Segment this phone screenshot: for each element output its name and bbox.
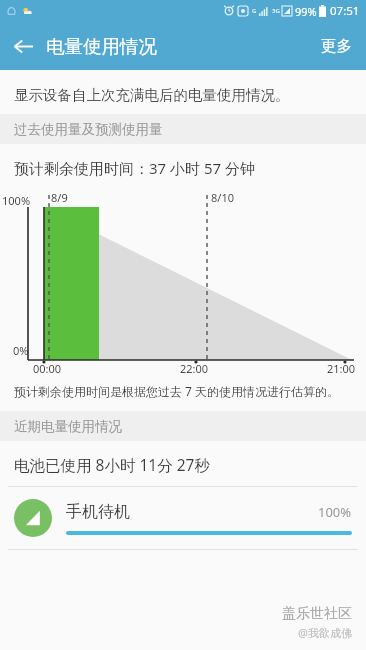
staticText: 近期电量使用情况 [14, 418, 122, 435]
button[interactable]: 手机待机 [0, 487, 366, 549]
staticText: 电池已使用 8小时 11分 27秒 [14, 454, 210, 475]
staticText: 显示设备自上次充满电后的电量使用情况。 [14, 86, 290, 104]
staticText: 更多 [321, 36, 352, 56]
staticText: 100% [2, 193, 31, 208]
staticText: @我欲成佛 [298, 625, 352, 640]
staticText: 电量使用情况 [46, 35, 157, 58]
staticText: 8/9 [51, 190, 68, 205]
staticText: 100% [318, 503, 352, 521]
staticText: G [252, 7, 257, 15]
staticText: 过去使用量及预测使用量 [14, 121, 163, 138]
button[interactable]: Back [0, 23, 46, 69]
staticText: 22:00 [180, 361, 209, 376]
staticText: 07:51 [330, 3, 360, 19]
staticText: 预计剩余使用时间是根据您过去 7 天的使用情况进行估算的。 [14, 383, 340, 399]
staticText: 00:00 [33, 361, 62, 376]
staticText: 预计剩余使用时间：37 小时 57 分钟 [14, 158, 256, 178]
staticText: 3G [272, 7, 280, 15]
staticText: 手机待机 [66, 502, 318, 522]
staticText: 8/10 [211, 190, 234, 205]
staticText: 21:00 [327, 361, 356, 376]
button[interactable]: 更多 [307, 24, 366, 68]
staticText: 99% [295, 4, 317, 19]
staticText: 盖乐世社区 [282, 605, 352, 623]
staticText: 0% [13, 343, 29, 358]
